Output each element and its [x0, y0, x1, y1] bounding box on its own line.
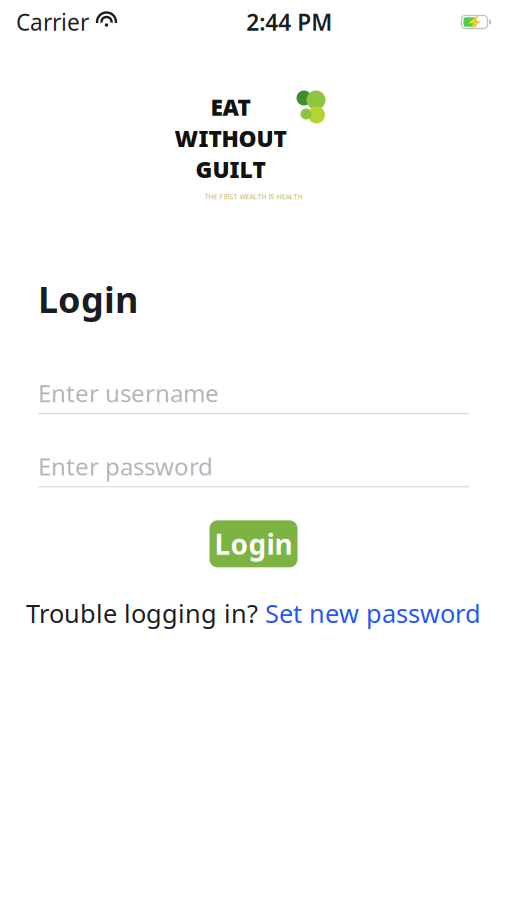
button[interactable]: Login	[209, 520, 297, 567]
staticText: Enter username	[38, 377, 219, 409]
staticText: Login	[38, 275, 138, 323]
staticText: GUILT	[195, 154, 265, 184]
staticText: 2:44 PM	[246, 7, 332, 37]
staticText: EAT	[210, 92, 250, 122]
staticText: Trouble logging in?	[26, 596, 258, 630]
staticText: Set new password	[265, 596, 481, 630]
staticText: THE FIRST WEALTH IS HEALTH	[204, 192, 302, 201]
staticText: Login	[214, 525, 292, 562]
button[interactable]: Set new password	[265, 596, 481, 630]
staticText: WITHOUT	[174, 123, 286, 153]
staticText: Enter password	[38, 450, 213, 482]
staticText: ⚡	[466, 14, 483, 30]
staticText: Carrier	[16, 7, 89, 37]
